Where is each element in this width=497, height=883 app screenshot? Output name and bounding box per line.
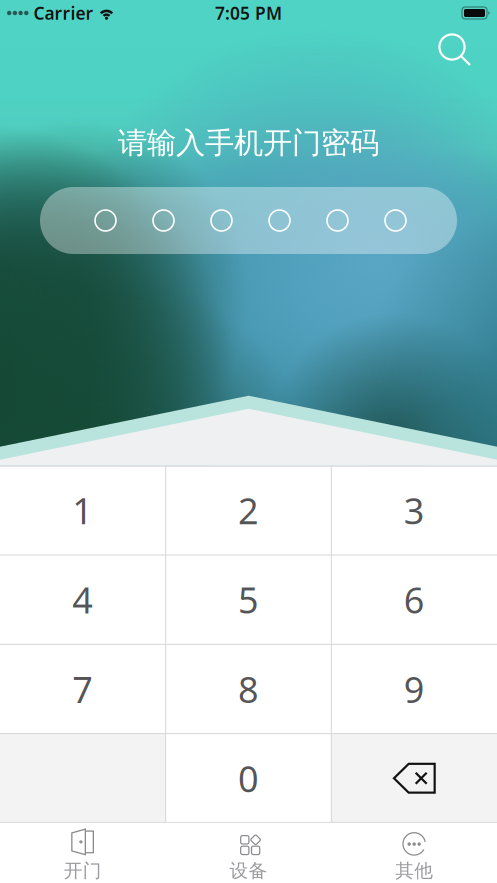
staticText: 4	[72, 576, 93, 623]
staticText: 2	[238, 486, 259, 534]
button[interactable]: 5	[166, 555, 331, 644]
staticText: 6	[404, 576, 425, 623]
staticText: 7	[72, 665, 93, 713]
button[interactable]: 其他	[331, 823, 497, 883]
staticText: 8	[238, 665, 259, 713]
button[interactable]: Search	[433, 28, 477, 72]
staticText: 请输入手机开门密码	[118, 125, 379, 161]
button[interactable]: 开门	[0, 823, 166, 883]
staticText: Carrier	[33, 1, 93, 24]
staticText: 3	[404, 486, 425, 534]
button[interactable]: 6	[331, 555, 497, 644]
button[interactable]: 7	[0, 644, 166, 734]
staticText: 其他	[395, 859, 433, 882]
button[interactable]: 1	[0, 466, 166, 555]
staticText: 1	[72, 486, 93, 534]
button[interactable]: 4	[0, 555, 166, 644]
button[interactable]: 2	[166, 466, 331, 555]
staticText: 9	[404, 665, 425, 713]
staticText: 设备	[229, 859, 267, 882]
button[interactable]: 3	[331, 466, 497, 555]
button[interactable]: 0	[166, 734, 331, 823]
staticText: 开门	[64, 859, 102, 882]
button[interactable]: 8	[166, 644, 331, 734]
button[interactable]: Delete	[331, 734, 497, 823]
button[interactable]: 设备	[166, 823, 331, 883]
staticText: 7:05 PM	[215, 1, 282, 24]
staticText: 0	[238, 754, 259, 802]
button[interactable]: 9	[331, 644, 497, 734]
staticText: 5	[238, 576, 259, 623]
